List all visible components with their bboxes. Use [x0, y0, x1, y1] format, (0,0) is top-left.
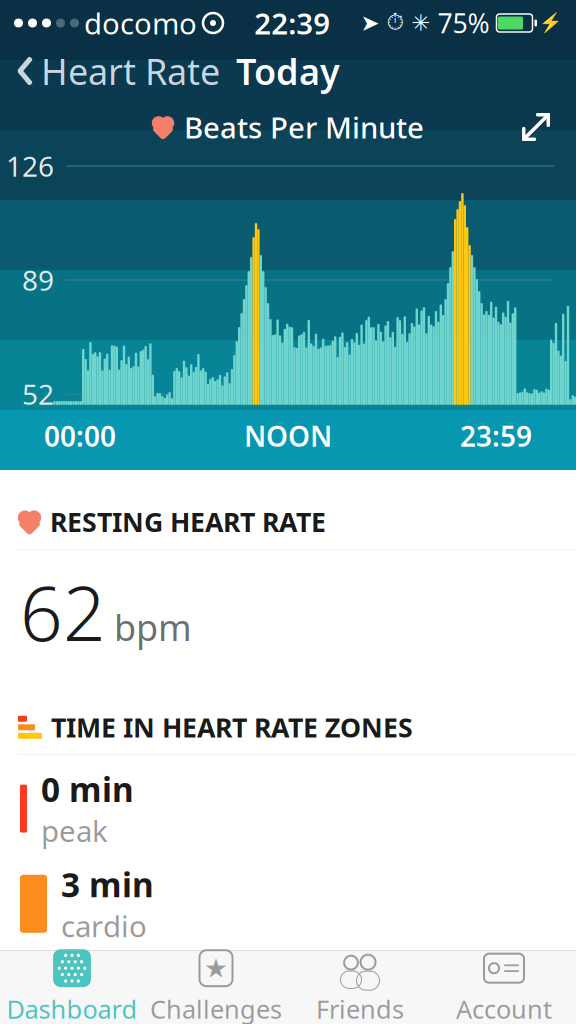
staticText: 1 hr 7 min [369, 957, 536, 1002]
staticText: Challenges [150, 992, 282, 1024]
staticText: bpm [114, 603, 192, 651]
staticText: NOON [244, 417, 332, 455]
staticText: 62 [20, 562, 106, 662]
staticText: 22:39 [254, 3, 330, 42]
button[interactable]: Account [432, 951, 576, 1024]
staticText: docomo [84, 3, 197, 42]
staticText: 52 [22, 375, 54, 413]
staticText: 89 [22, 261, 54, 299]
staticText: Dashboard [6, 992, 137, 1024]
staticText: 126 [6, 147, 54, 185]
staticText: peak [41, 811, 108, 850]
button[interactable]: ★ [144, 951, 288, 1024]
staticText: ✳ [411, 10, 430, 36]
staticText: 3 min [61, 862, 154, 906]
staticText: ⏱ [386, 12, 404, 34]
staticText: fat burn [369, 1002, 480, 1024]
button[interactable]: Expand chart [510, 101, 562, 153]
staticText: ➤ [360, 10, 379, 36]
staticText: RESTING HEART RATE [50, 504, 326, 539]
button[interactable]: Friends [288, 951, 432, 1024]
staticText: 23:59 [460, 417, 532, 455]
staticText: ★ [204, 953, 228, 983]
staticText: 00:00 [44, 417, 116, 455]
staticText: Account [456, 992, 552, 1024]
button[interactable]: Dashboard [0, 951, 144, 1024]
staticText: cardio [61, 906, 147, 945]
staticText: 75% [437, 5, 489, 41]
staticText: Heart Rate [41, 47, 220, 95]
staticText: Friends [316, 992, 404, 1024]
staticText: Beats Per Minute [184, 107, 424, 146]
staticText: TIME IN HEART RATE ZONES [51, 710, 413, 745]
staticText: ⚡ [539, 12, 562, 34]
staticText: Today [236, 47, 340, 95]
button[interactable]: Heart Rate [0, 44, 236, 98]
staticText: 0 min [41, 767, 134, 811]
